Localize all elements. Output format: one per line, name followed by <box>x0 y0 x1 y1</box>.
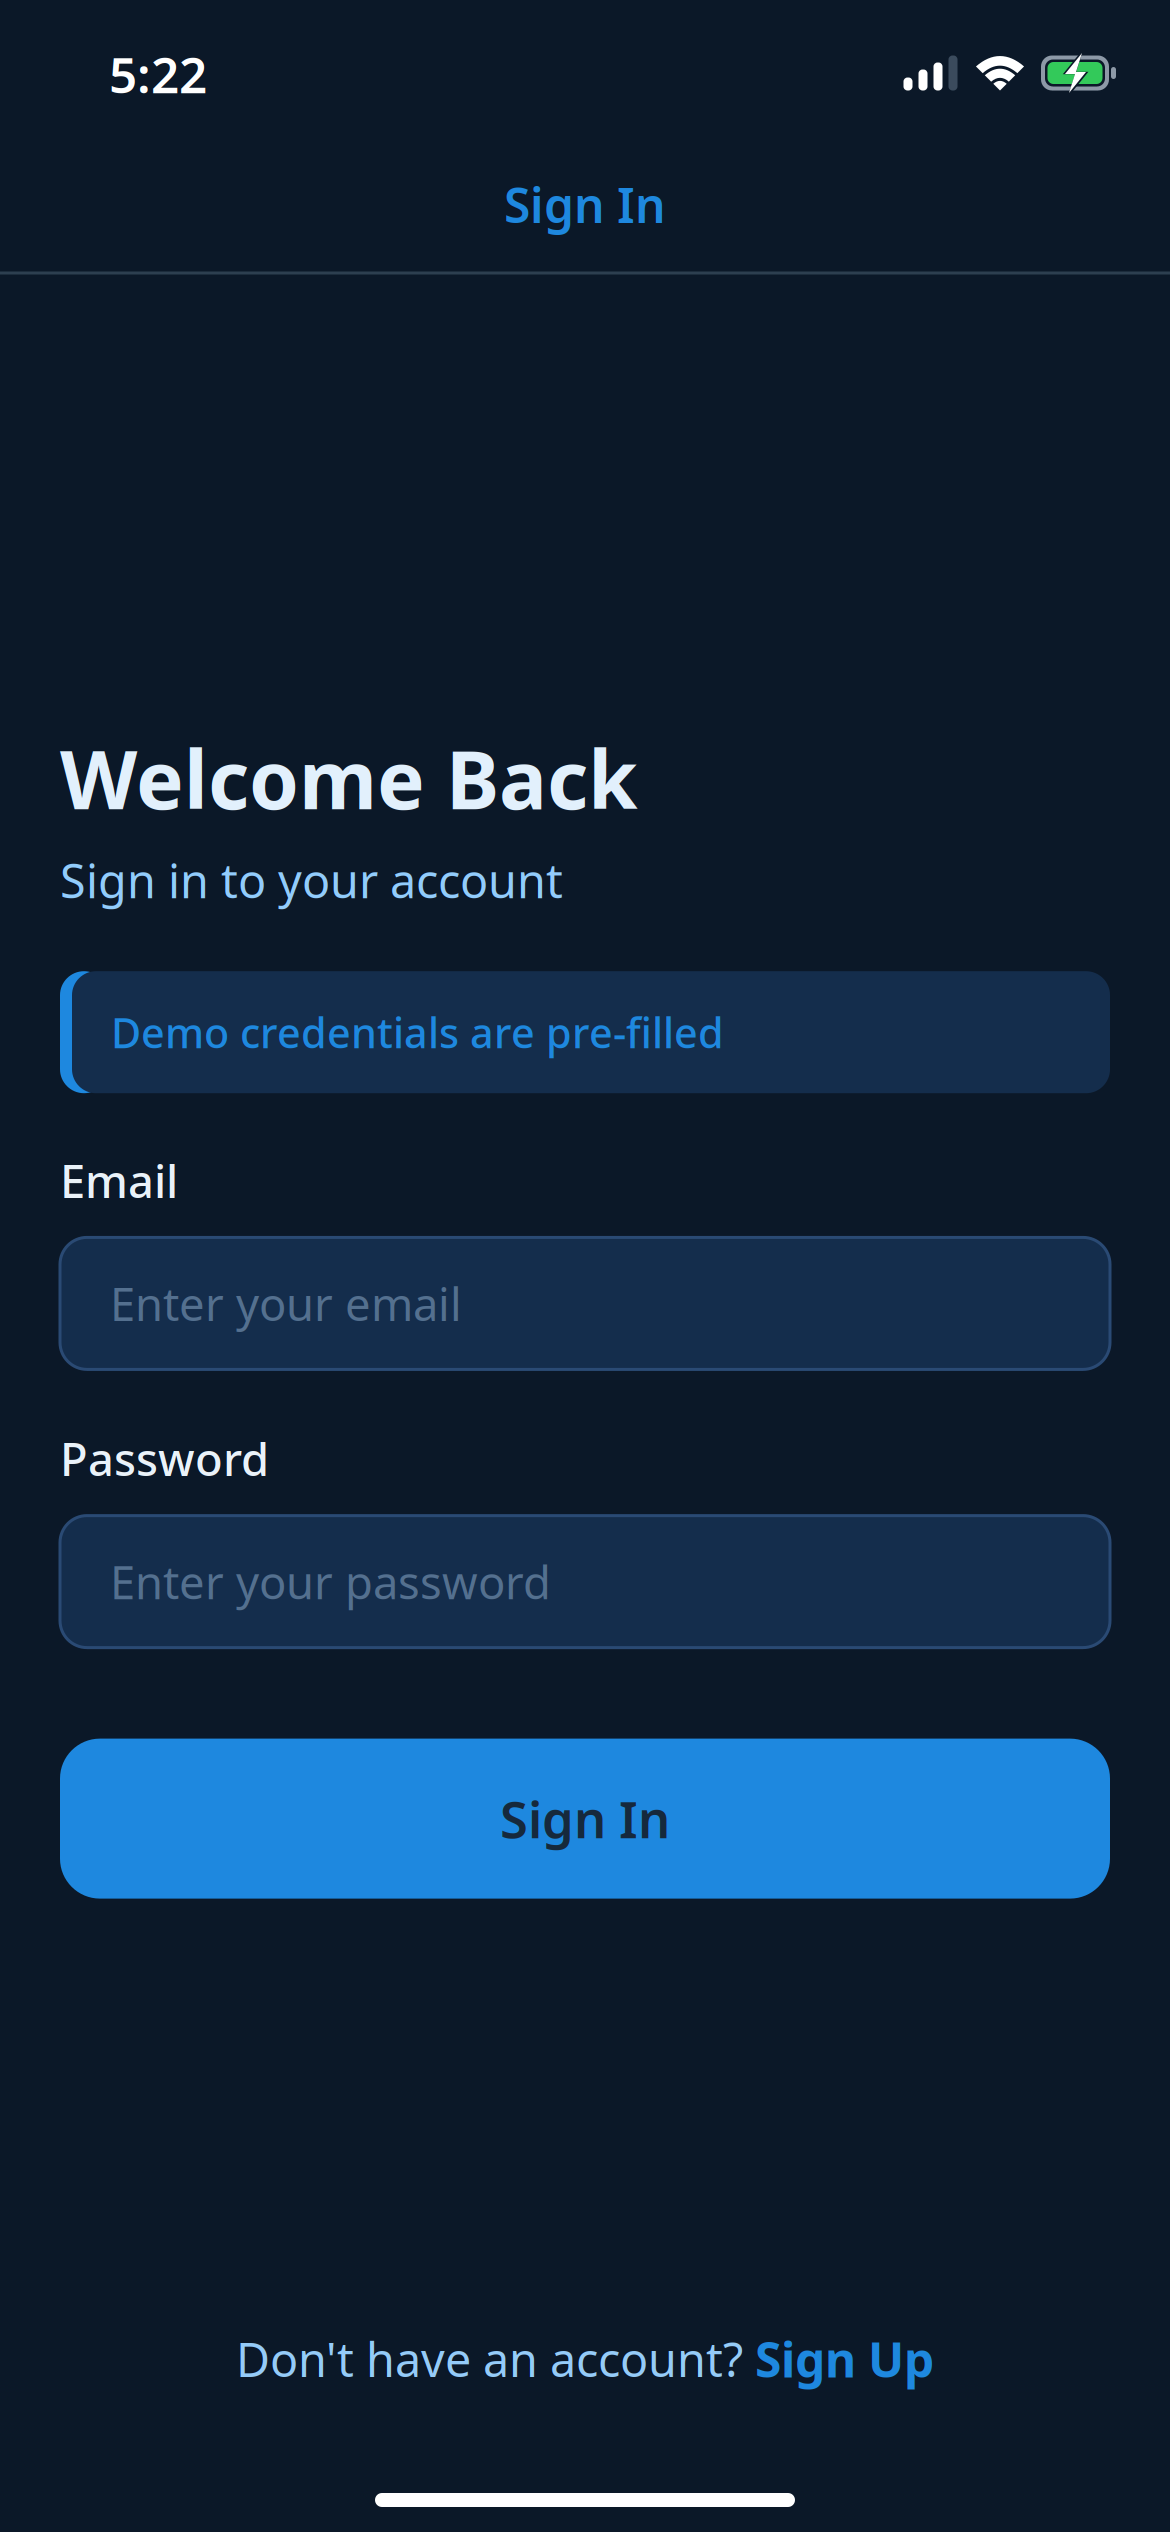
staticText: 5:22 <box>109 41 207 107</box>
staticText: Sign Up <box>755 2327 934 2391</box>
staticText: Demo credentials are pre-filled <box>111 1005 724 1060</box>
staticText: Don't have an account? <box>236 2328 755 2390</box>
staticText: Enter your email <box>110 1273 462 1333</box>
button[interactable]: Enter your password <box>60 1516 1110 1648</box>
staticText: Sign In <box>500 1785 670 1852</box>
staticText: Enter your password <box>110 1551 551 1612</box>
staticText: Password <box>60 1428 269 1489</box>
staticText: Welcome Back <box>60 725 638 831</box>
staticText: Sign in to your account <box>60 849 563 911</box>
staticText: Sign In <box>504 173 666 236</box>
button[interactable]: Enter your email <box>60 1237 1110 1369</box>
button[interactable]: Sign In <box>60 1739 1110 1899</box>
button[interactable]: Don't have an account? <box>236 2324 934 2394</box>
staticText: Email <box>60 1150 178 1210</box>
